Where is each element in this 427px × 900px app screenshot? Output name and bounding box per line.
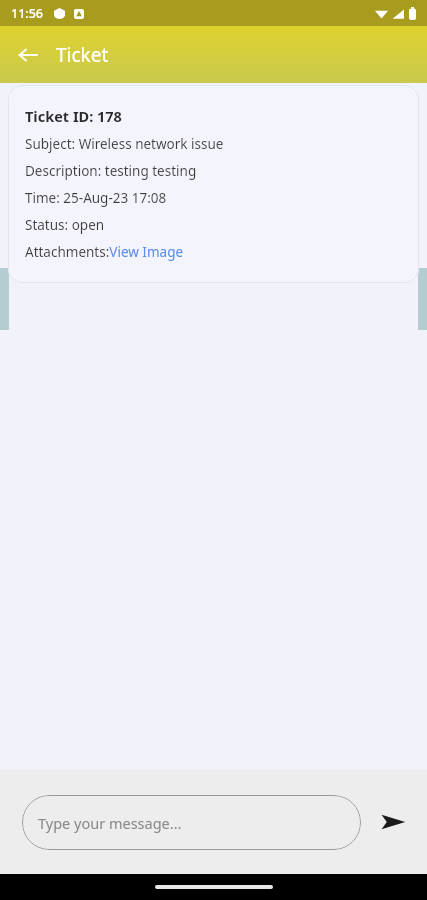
staticText: Attachments:View Image <box>25 243 184 261</box>
button[interactable]: Attachments:View Image <box>25 243 184 261</box>
staticText: 11:56 <box>11 5 44 22</box>
staticText: Status: open <box>25 216 105 234</box>
button[interactable]: Send <box>369 798 417 846</box>
staticText: Ticket ID: 178 <box>25 106 122 126</box>
button[interactable]: Type your message... <box>22 795 361 850</box>
button[interactable]: Ticket ID: 178 <box>8 85 419 283</box>
staticText: Subject: Wireless network issue <box>25 135 224 153</box>
button[interactable]: Back <box>14 41 42 69</box>
staticText: Ticket <box>56 42 109 68</box>
staticText: Type your message... <box>38 813 182 833</box>
staticText: Time: 25-Aug-23 17:08 <box>25 189 167 207</box>
staticText: Description: testing testing <box>25 162 197 180</box>
